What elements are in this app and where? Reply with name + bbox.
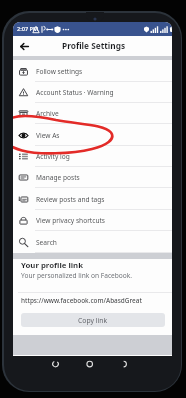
staticText: 2:07 PM [17, 25, 39, 33]
button[interactable]: View privacy shortcuts [13, 210, 172, 231]
staticText: Archive [36, 109, 59, 118]
staticText: Copy link [78, 316, 108, 325]
button[interactable]: View As [13, 124, 172, 146]
button[interactable]: Follow settings [13, 60, 172, 82]
button[interactable]: Archive [13, 103, 172, 124]
staticText: Follow settings [36, 67, 83, 76]
button[interactable]: Account Status · Warning [13, 82, 172, 103]
staticText: Activity log [36, 152, 70, 161]
button[interactable]: Review posts and tags [13, 188, 172, 210]
staticText: Review posts and tags [36, 195, 105, 204]
button[interactable]: Home [79, 355, 101, 373]
staticText: Account Status · Warning [36, 88, 114, 97]
button[interactable]: Activity log [13, 146, 172, 167]
staticText: Your personalized link on Facebook. [21, 271, 133, 280]
staticText: Search [36, 238, 57, 247]
button[interactable]: Recent apps [113, 355, 135, 373]
staticText: Profile Settings [62, 40, 126, 51]
button[interactable]: Back [18, 40, 31, 53]
staticText: View privacy shortcuts [36, 216, 106, 225]
button[interactable]: Search [13, 231, 172, 253]
button[interactable]: Copy link [21, 313, 165, 327]
staticText: https://www.facebook.com/AbasdGreat [21, 296, 142, 305]
staticText: View As [36, 131, 60, 140]
button[interactable]: Manage posts [13, 167, 172, 188]
staticText: Your profile link [21, 260, 83, 271]
staticText: Manage posts [36, 173, 80, 182]
button[interactable]: Back [44, 355, 66, 373]
